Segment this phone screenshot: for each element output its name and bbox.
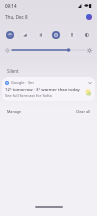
button[interactable]: Dark theme xyxy=(83,31,91,39)
staticText: 12° tomorrow · 3° warmer than today xyxy=(5,87,80,93)
staticText: Thu, Dec 8 xyxy=(5,14,28,20)
button[interactable]: Google · 3m xyxy=(2,77,95,101)
button[interactable]: Clear all xyxy=(73,107,93,116)
staticText: Clear all xyxy=(76,109,90,114)
button[interactable]: Manage xyxy=(4,107,25,116)
staticText: Manage xyxy=(7,109,22,114)
other: Auto brightness xyxy=(87,48,92,53)
staticText: Silent xyxy=(7,68,19,74)
button[interactable]: Mobile data xyxy=(21,31,29,39)
button[interactable]: Flashlight xyxy=(68,31,76,39)
staticText: Google · 3m xyxy=(11,80,34,85)
staticText: See full forecast for Sofia xyxy=(5,93,52,98)
button[interactable]: Wi-Fi xyxy=(6,31,14,39)
button[interactable]: Do not disturb xyxy=(52,31,60,39)
staticText: 09:14 xyxy=(5,3,17,9)
button[interactable]: Bluetooth xyxy=(37,31,45,39)
button[interactable]: Profile xyxy=(86,14,92,20)
